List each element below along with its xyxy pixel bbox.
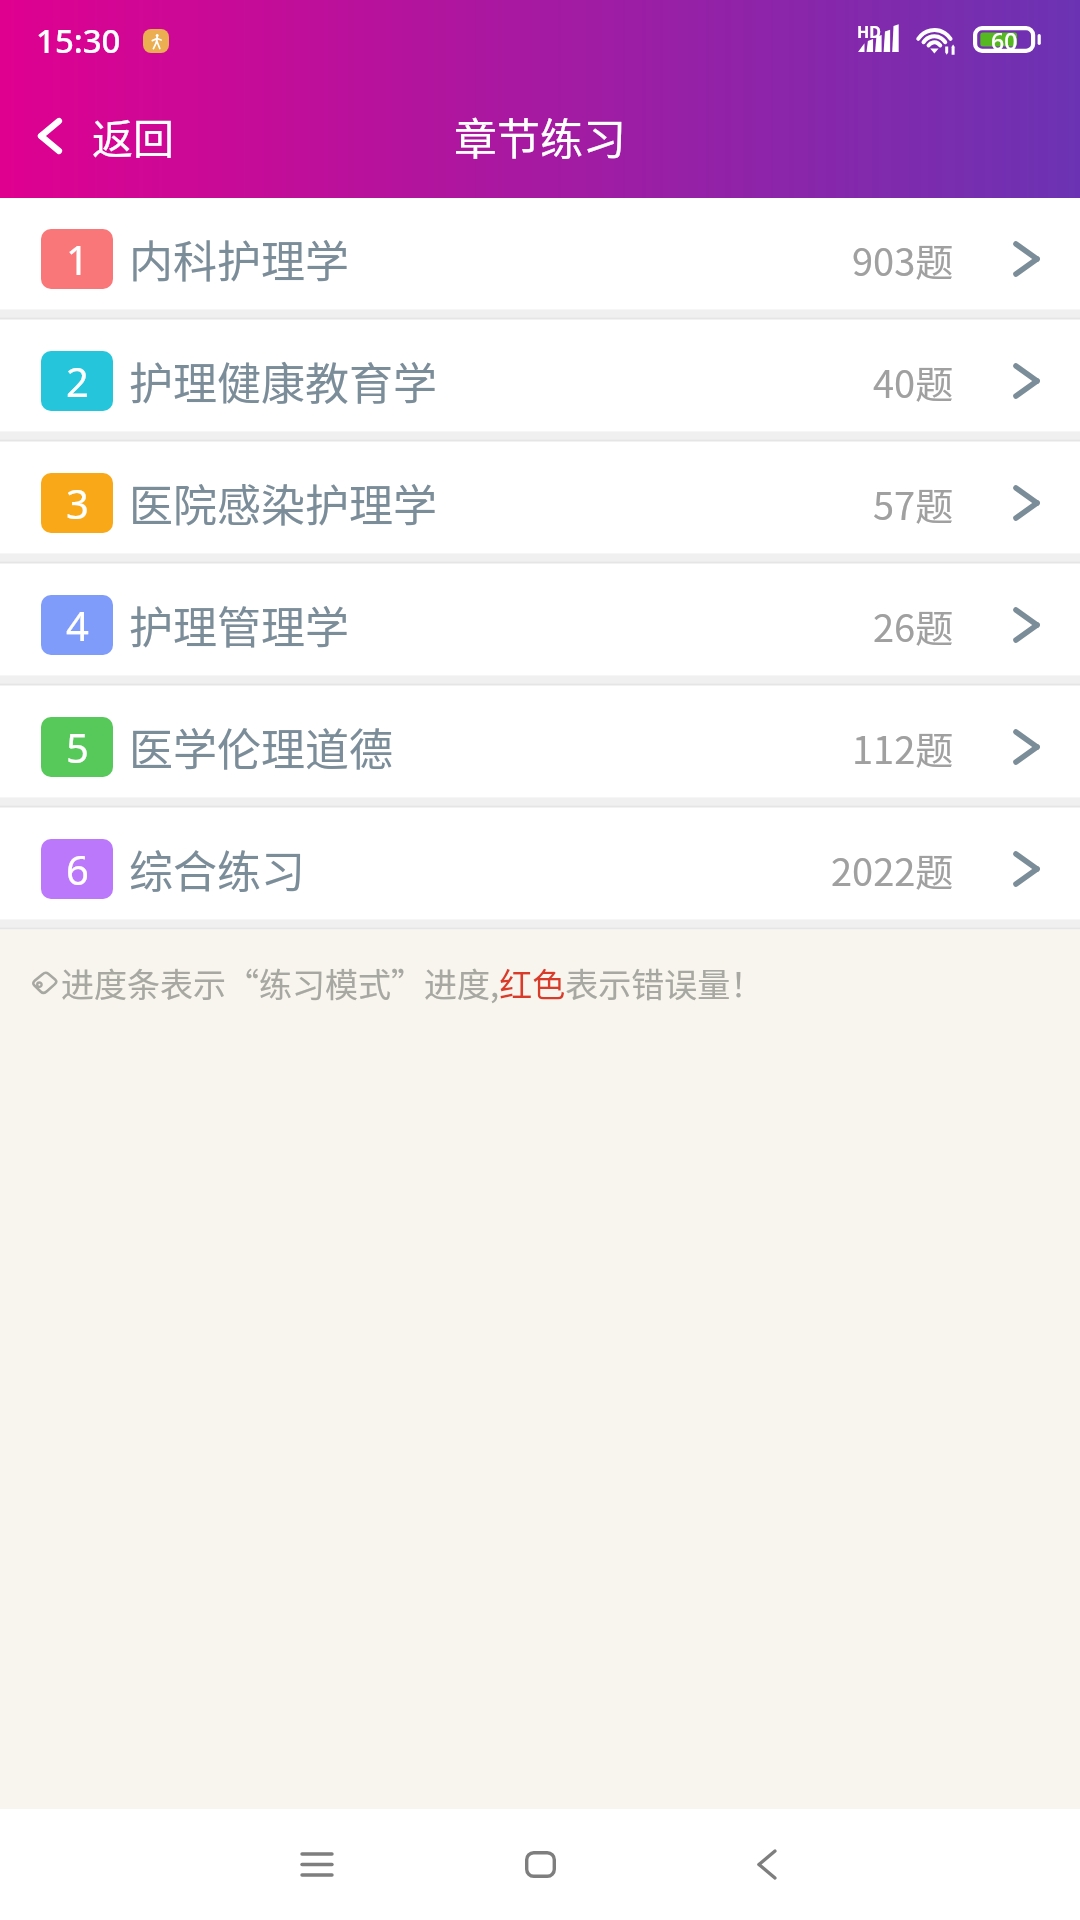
staticText: 返回 [92, 106, 174, 165]
staticText: 进度条表示“练习模式”进度,红色表示错误量！ [61, 959, 764, 1007]
staticText: 112题 [852, 720, 954, 775]
staticText: 15:30 [36, 18, 121, 63]
staticText: 40题 [873, 354, 954, 409]
staticText: 2 [66, 354, 89, 408]
staticText: 5 [66, 720, 89, 774]
staticText: 内科护理学 [129, 227, 349, 291]
button[interactable]: Back [707, 1809, 827, 1920]
button[interactable]: Home [480, 1809, 600, 1920]
button[interactable]: 5 [0, 686, 1080, 797]
button[interactable]: Recent apps [257, 1809, 377, 1920]
button[interactable]: 2 [0, 320, 1080, 431]
button[interactable]: 3 [0, 442, 1080, 553]
staticText: 903题 [852, 232, 954, 287]
button[interactable]: 4 [0, 564, 1080, 675]
button[interactable]: 返回 [0, 86, 198, 185]
staticText: 医学伦理道德 [129, 715, 393, 779]
staticText: HD [857, 21, 881, 43]
button[interactable]: 1 [0, 198, 1080, 309]
staticText: 护理健康教育学 [129, 349, 437, 413]
staticText: 综合练习 [129, 837, 305, 901]
staticText: 医院感染护理学 [129, 471, 437, 535]
button[interactable]: 6 [0, 808, 1080, 919]
staticText: 1 [66, 232, 89, 286]
staticText: 57题 [873, 476, 954, 531]
staticText: 章节练习 [454, 105, 626, 167]
staticText: 3 [66, 476, 89, 530]
staticText: 60 [991, 25, 1018, 52]
staticText: 6 [66, 842, 89, 896]
staticText: 护理管理学 [129, 593, 349, 657]
staticText: 26题 [873, 598, 954, 653]
staticText: 2022题 [831, 842, 954, 897]
staticText: 4 [66, 598, 89, 652]
